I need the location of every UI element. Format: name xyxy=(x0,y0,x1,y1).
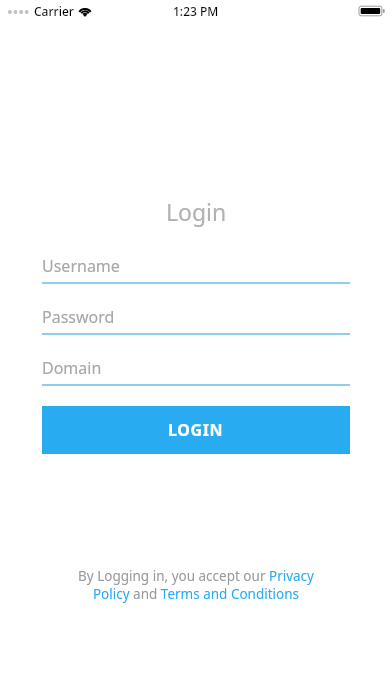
staticText: Password xyxy=(42,306,115,328)
staticText: Carrier xyxy=(34,3,74,19)
button[interactable]: Password xyxy=(42,306,350,335)
staticText: LOGIN xyxy=(168,419,224,441)
button[interactable]: Domain xyxy=(42,357,350,386)
staticText: Username xyxy=(42,255,120,277)
staticText: Login xyxy=(166,196,227,227)
staticText: 1:23 PM xyxy=(173,3,219,19)
staticText: By Logging in, you accept our Privacy Po… xyxy=(58,567,334,603)
button[interactable]: LOGIN xyxy=(42,406,350,454)
button[interactable]: Username xyxy=(42,255,350,284)
staticText: Domain xyxy=(42,357,102,379)
